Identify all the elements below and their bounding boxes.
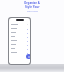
staticText: Style Your — [25, 5, 40, 9]
button[interactable] — [11, 35, 28, 39]
button[interactable] — [11, 43, 28, 47]
staticText: Daily Notes — [27, 10, 38, 13]
button[interactable] — [11, 51, 28, 55]
button[interactable] — [11, 39, 28, 43]
staticText: Organize & — [24, 1, 40, 5]
button[interactable] — [11, 31, 28, 35]
button[interactable] — [11, 47, 28, 51]
button[interactable]: Add note — [26, 54, 30, 59]
button[interactable] — [11, 24, 28, 25]
button[interactable] — [11, 27, 28, 31]
